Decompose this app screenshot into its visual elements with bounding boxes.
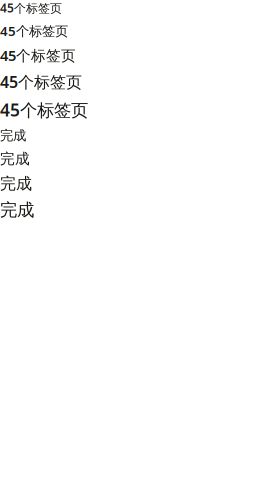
staticText: 45个标签页 xyxy=(0,22,68,40)
staticText: 完成 xyxy=(0,150,30,168)
staticText: 完成 xyxy=(0,199,34,221)
staticText: 45个标签页 xyxy=(0,46,76,65)
staticText: 45个标签页 xyxy=(0,0,62,16)
staticText: 完成 xyxy=(0,174,32,193)
staticText: 45个标签页 xyxy=(0,71,82,92)
staticText: 45个标签页 xyxy=(0,98,88,121)
staticText: 完成 xyxy=(0,127,26,144)
